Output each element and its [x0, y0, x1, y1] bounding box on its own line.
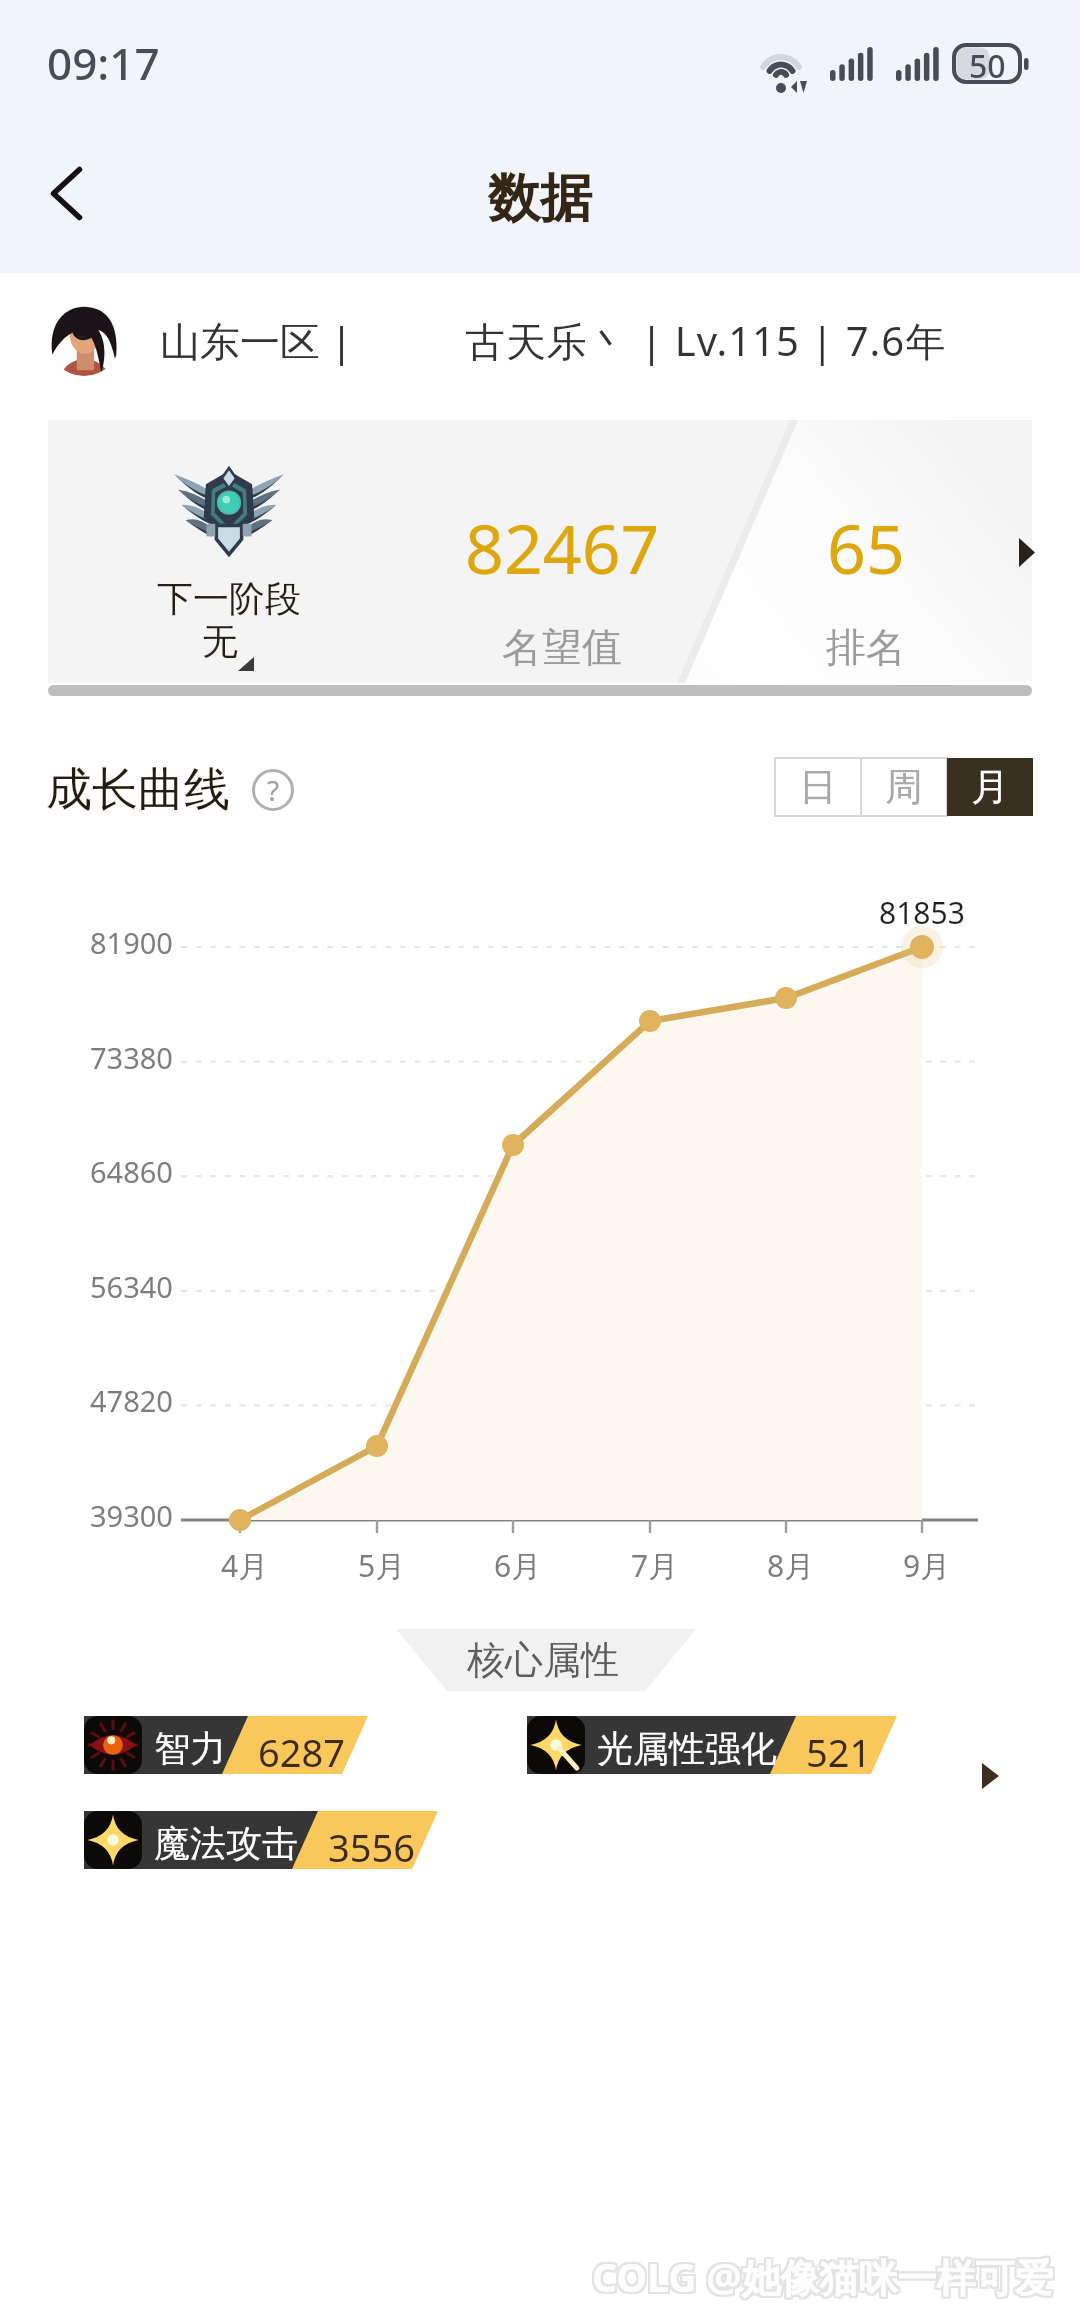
staticText: 古天乐丶 | Lv.115 | 7.6年 [465, 313, 947, 368]
staticText: 521 [806, 1726, 872, 1778]
button[interactable]: 日 [775, 758, 861, 816]
staticText: COLG @她像猫咪一样可爱 [590, 2250, 1052, 2303]
staticText: 成长曲线 [46, 761, 230, 819]
staticText: 56340 [90, 1267, 173, 1306]
staticText: COLG @她像猫咪一样可爱 [592, 2250, 1054, 2303]
staticText: COLG @她像猫咪一样可爱 [590, 2252, 1052, 2305]
staticText: ? [267, 771, 280, 809]
staticText: 50 [969, 44, 1006, 88]
staticText: 47820 [90, 1381, 173, 1420]
button[interactable]: Back [14, 141, 119, 246]
staticText: 数据 [0, 166, 1080, 232]
staticText: COLG @她像猫咪一样可爱 [592, 2248, 1054, 2301]
staticText: 8月 [767, 1545, 815, 1586]
staticText: 7月 [631, 1545, 679, 1586]
staticText: 智力 [154, 1726, 226, 1771]
button[interactable]: 智力 [84, 1716, 383, 1774]
staticText: 6月 [494, 1545, 542, 1586]
staticText: 82467 [465, 501, 660, 594]
staticText: 73380 [90, 1038, 173, 1077]
button[interactable]: 下一阶段 [48, 420, 1032, 683]
button[interactable]: 光属性强化 [527, 1716, 912, 1774]
staticText: 山东一区 | [160, 313, 353, 368]
staticText: COLG @她像猫咪一样可爱 [594, 2248, 1056, 2301]
staticText: 3556 [328, 1821, 415, 1873]
button[interactable]: More stats [997, 522, 1057, 582]
staticText: 81900 [90, 923, 173, 962]
staticText: 名望值 [502, 622, 622, 672]
staticText: 魔法攻击 [154, 1821, 298, 1866]
staticText: 无 [202, 619, 238, 664]
staticText: COLG @她像猫咪一样可爱 [594, 2250, 1056, 2303]
staticText: 81853 [879, 892, 965, 933]
staticText: COLG @她像猫咪一样可爱 [592, 2252, 1054, 2305]
staticText: 排名 [826, 622, 906, 672]
staticText: 周 [885, 763, 923, 811]
button[interactable]: 周 [861, 758, 947, 816]
staticText: 光属性强化 [597, 1726, 777, 1771]
staticText: 6287 [258, 1726, 345, 1778]
staticText: 核心属性 [467, 1636, 619, 1684]
button[interactable]: Help [250, 767, 296, 813]
staticText: COLG @她像猫咪一样可爱 [594, 2252, 1056, 2305]
button[interactable]: More attributes [960, 1746, 1020, 1806]
staticText: COLG @她像猫咪一样可爱 [590, 2248, 1052, 2301]
button[interactable]: 月 [947, 758, 1033, 816]
staticText: 月 [971, 763, 1009, 811]
staticText: 5月 [358, 1545, 406, 1586]
staticText: 65 [827, 501, 905, 594]
staticText: 9月 [903, 1545, 951, 1586]
button[interactable]: 魔法攻击 [84, 1811, 453, 1869]
staticText: 下一阶段 [157, 576, 301, 621]
staticText: 4月 [221, 1545, 269, 1586]
staticText: 日 [799, 763, 837, 811]
staticText: 39300 [90, 1496, 173, 1535]
staticText: 64860 [90, 1152, 173, 1191]
staticText: 09:17 [47, 33, 160, 93]
